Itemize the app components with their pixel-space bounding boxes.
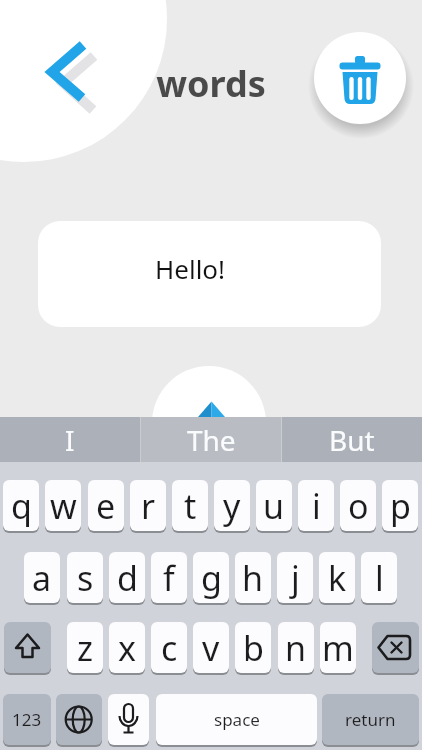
staticText: a: [32, 555, 52, 601]
staticText: q: [11, 483, 32, 529]
staticText: p: [390, 483, 411, 529]
staticText: u: [263, 483, 285, 529]
button[interactable]: a: [24, 552, 60, 603]
staticText: I: [65, 421, 75, 459]
staticText: words: [0, 59, 422, 108]
button[interactable]: d: [109, 552, 145, 603]
staticText: g: [201, 555, 222, 601]
button[interactable]: x: [109, 622, 145, 673]
button[interactable]: j: [277, 552, 313, 603]
staticText: Hello!: [155, 251, 226, 286]
button[interactable]: f: [151, 552, 187, 603]
button[interactable]: p: [382, 480, 418, 531]
button[interactable]: 123: [3, 694, 51, 745]
button[interactable]: y: [214, 480, 250, 531]
staticText: space: [214, 708, 260, 731]
staticText: t: [184, 483, 197, 529]
staticText: n: [285, 625, 307, 671]
staticText: v: [202, 625, 220, 671]
staticText: y: [223, 483, 241, 529]
staticText: w: [50, 483, 77, 529]
staticText: c: [161, 625, 178, 671]
button[interactable]: [372, 622, 419, 673]
staticText: 123: [12, 708, 42, 731]
button[interactable]: v: [193, 622, 229, 673]
staticText: r: [141, 483, 156, 529]
staticText: z: [77, 625, 93, 671]
button[interactable]: n: [278, 622, 314, 673]
staticText: d: [117, 555, 138, 601]
button[interactable]: i: [298, 480, 334, 531]
staticText: o: [348, 483, 369, 529]
staticText: b: [243, 625, 264, 671]
button[interactable]: g: [193, 552, 229, 603]
button[interactable]: w: [45, 480, 81, 531]
button[interactable]: s: [67, 552, 103, 603]
button[interactable]: b: [235, 622, 271, 673]
button[interactable]: space: [156, 694, 317, 745]
staticText: But: [329, 421, 375, 459]
button[interactable]: h: [235, 552, 271, 603]
staticText: e: [96, 483, 116, 529]
button[interactable]: r: [130, 480, 166, 531]
button[interactable]: I: [0, 417, 140, 462]
button[interactable]: t: [172, 480, 208, 531]
button[interactable]: [56, 694, 102, 745]
button[interactable]: o: [340, 480, 376, 531]
staticText: k: [328, 555, 347, 601]
staticText: The: [187, 421, 236, 459]
button[interactable]: [4, 622, 51, 673]
button[interactable]: But: [282, 417, 422, 462]
button[interactable]: l: [361, 552, 397, 603]
button[interactable]: c: [151, 622, 187, 673]
button[interactable]: The: [141, 417, 281, 462]
button[interactable]: Hello!: [38, 221, 381, 327]
staticText: j: [291, 555, 300, 601]
button[interactable]: z: [67, 622, 103, 673]
staticText: x: [118, 625, 136, 671]
staticText: s: [77, 555, 94, 601]
button[interactable]: [0, 0, 167, 162]
button[interactable]: [314, 32, 406, 124]
button[interactable]: e: [88, 480, 124, 531]
button[interactable]: [108, 694, 149, 745]
button[interactable]: k: [319, 552, 355, 603]
staticText: return: [345, 708, 396, 731]
button[interactable]: m: [320, 622, 356, 673]
staticText: l: [375, 555, 384, 601]
button[interactable]: u: [256, 480, 292, 531]
staticText: h: [242, 555, 264, 601]
staticText: f: [163, 555, 175, 601]
button[interactable]: return: [322, 694, 419, 745]
button[interactable]: q: [3, 480, 39, 531]
staticText: m: [322, 625, 354, 671]
staticText: i: [312, 483, 321, 529]
